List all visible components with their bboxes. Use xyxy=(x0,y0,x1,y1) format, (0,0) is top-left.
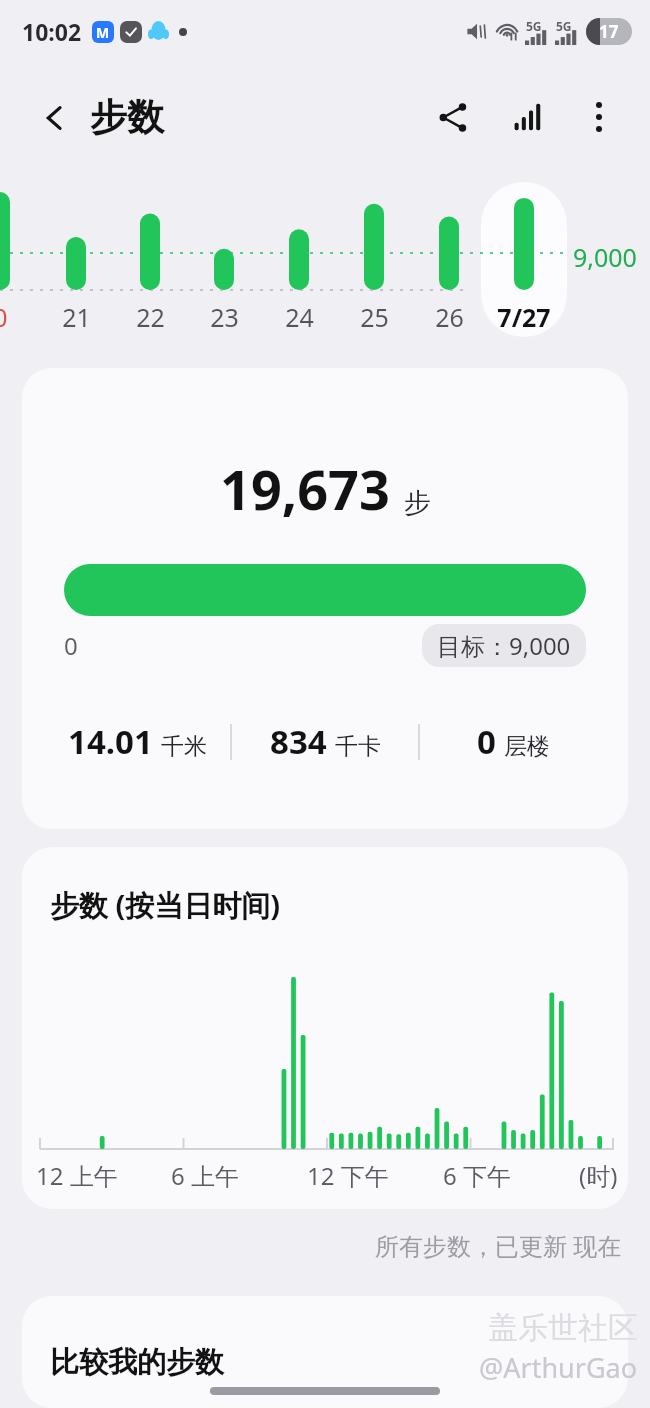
staticText: 0 xyxy=(477,719,496,764)
staticText: 步数 xyxy=(90,94,164,141)
button[interactable] xyxy=(481,182,567,337)
staticText: 目标：9,000 xyxy=(437,629,571,662)
staticText: 9,000 xyxy=(573,240,637,274)
staticText: 6 下午 xyxy=(443,1159,579,1192)
button[interactable]: 14.01 xyxy=(44,719,230,764)
staticText: 6 上午 xyxy=(171,1159,307,1192)
staticText: 千米 xyxy=(161,732,207,761)
button[interactable]: Statistics xyxy=(502,90,556,144)
staticText: @ArthurGao xyxy=(479,1349,638,1386)
staticText: 834 xyxy=(270,719,327,764)
button[interactable]: Share xyxy=(426,90,480,144)
button[interactable]: 19,673 xyxy=(22,368,628,829)
staticText: 0 xyxy=(64,629,78,662)
staticText: 千卡 xyxy=(335,732,381,761)
staticText: (时) xyxy=(579,1159,618,1192)
staticText: 14.01 xyxy=(68,719,153,764)
staticText: 盖乐世社区 xyxy=(488,1309,638,1347)
staticText: 24 xyxy=(285,300,314,334)
button[interactable]: 步数 (按当日时间) xyxy=(22,847,628,1209)
staticText: M xyxy=(96,23,110,42)
button[interactable]: 834 xyxy=(232,719,418,764)
staticText: 12 下午 xyxy=(307,1159,443,1192)
button[interactable]: Back xyxy=(32,95,78,141)
staticText: 层楼 xyxy=(504,732,550,761)
staticText: 23 xyxy=(210,300,239,334)
staticText: 5G xyxy=(526,18,542,34)
staticText: 0 xyxy=(0,300,8,334)
staticText: 步数 (按当日时间) xyxy=(50,885,281,925)
staticText: 步 xyxy=(404,486,431,520)
staticText: 21 xyxy=(62,300,91,334)
staticText: 19,673 xyxy=(220,452,390,526)
staticText: 10:02 xyxy=(22,16,82,47)
button[interactable]: More options xyxy=(572,90,626,144)
staticText: 所有步数，已更新 现在 xyxy=(375,1229,622,1262)
button[interactable]: 比较我的步数 xyxy=(22,1296,628,1408)
staticText: 7/27 xyxy=(497,300,551,334)
staticText: 12 上午 xyxy=(36,1159,171,1192)
staticText: 25 xyxy=(360,300,389,334)
button[interactable]: 0 xyxy=(420,719,606,764)
staticText: 5G xyxy=(556,18,572,34)
staticText: 17 xyxy=(599,20,619,43)
staticText: 比较我的步数 xyxy=(50,1344,224,1381)
staticText: 22 xyxy=(136,300,165,334)
staticText: 26 xyxy=(435,300,464,334)
